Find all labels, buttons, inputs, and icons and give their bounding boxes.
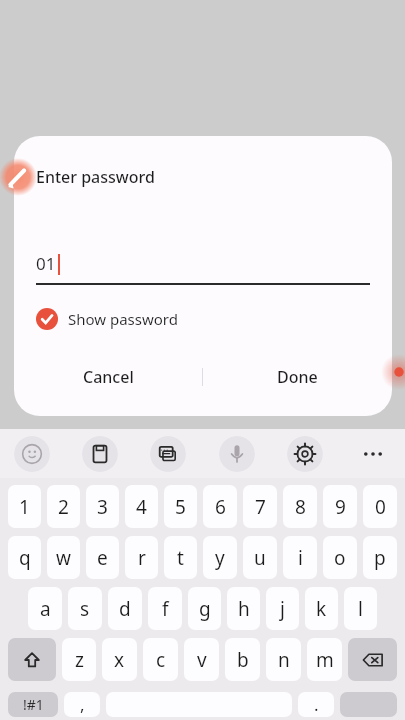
staticText: 2 — [58, 494, 69, 520]
staticText: Done — [277, 366, 318, 388]
staticText: o — [334, 545, 346, 571]
button[interactable]: c — [143, 638, 178, 681]
button[interactable]: Clipboard — [82, 436, 118, 472]
button[interactable]: Voice input — [219, 436, 255, 472]
button[interactable]: g — [188, 587, 221, 630]
staticText: m — [316, 647, 334, 673]
staticText: 3 — [97, 494, 108, 520]
staticText: 7 — [255, 494, 266, 520]
button[interactable]: k — [305, 587, 338, 630]
button[interactable]: 2 — [47, 485, 80, 528]
button[interactable]: i — [283, 536, 317, 579]
button[interactable]: Backspace — [348, 638, 397, 681]
button[interactable]: p — [363, 536, 397, 579]
staticText: !#1 — [23, 695, 44, 714]
button[interactable]: r — [125, 536, 158, 579]
button[interactable]: x — [102, 638, 137, 681]
button[interactable]: !#1 — [8, 692, 58, 717]
button[interactable]: a — [28, 587, 62, 630]
staticText: Cancel — [83, 366, 134, 388]
button[interactable]: o — [323, 536, 357, 579]
button[interactable]: Emoji — [14, 436, 50, 472]
staticText: t — [177, 545, 184, 571]
button[interactable]: Keyboard modes — [150, 436, 186, 472]
button[interactable]: , — [64, 692, 100, 717]
staticText: p — [374, 545, 386, 571]
button[interactable]: 5 — [164, 485, 197, 528]
button[interactable]: j — [266, 587, 299, 630]
button[interactable]: 8 — [283, 485, 317, 528]
button[interactable]: 1 — [8, 485, 41, 528]
staticText: Enter password — [36, 166, 155, 188]
button[interactable]: b — [225, 638, 260, 681]
staticText: i — [298, 545, 303, 571]
button[interactable]: h — [227, 587, 260, 630]
button[interactable]: More options — [355, 436, 391, 472]
button[interactable]: Done — [203, 353, 392, 401]
staticText: n — [278, 647, 290, 673]
staticText: d — [119, 596, 131, 622]
staticText: x — [114, 647, 125, 673]
staticText: l — [358, 596, 363, 622]
staticText: u — [254, 545, 266, 571]
button[interactable]: 9 — [323, 485, 357, 528]
button[interactable]: e — [86, 536, 119, 579]
staticText: . — [314, 693, 319, 716]
button[interactable]: z — [62, 638, 96, 681]
button[interactable]: u — [243, 536, 277, 579]
staticText: v — [197, 647, 207, 673]
staticText: 8 — [295, 494, 306, 520]
staticText: y — [215, 545, 225, 571]
button[interactable]: . — [298, 692, 334, 717]
button[interactable]: Show password — [36, 302, 178, 336]
staticText: 4 — [136, 494, 147, 520]
staticText: j — [280, 596, 285, 622]
button[interactable]: d — [108, 587, 142, 630]
staticText: b — [237, 647, 249, 673]
staticText: 0 — [375, 494, 386, 520]
button[interactable]: m — [307, 638, 342, 681]
staticText: Show password — [68, 309, 178, 329]
button[interactable]: n — [266, 638, 301, 681]
staticText: z — [75, 647, 84, 673]
staticText: h — [238, 596, 250, 622]
button[interactable]: 6 — [203, 485, 237, 528]
button[interactable]: q — [8, 536, 41, 579]
staticText: 01 — [36, 252, 56, 275]
button[interactable]: f — [148, 587, 182, 630]
button[interactable]: t — [164, 536, 197, 579]
button[interactable]: 3 — [86, 485, 119, 528]
staticText: g — [199, 596, 211, 622]
staticText: e — [97, 545, 108, 571]
staticText: w — [56, 545, 71, 571]
button[interactable]: 7 — [243, 485, 277, 528]
button[interactable]: Enter — [340, 692, 397, 717]
button[interactable]: 0 — [363, 485, 397, 528]
button[interactable]: l — [344, 587, 377, 630]
button[interactable]: s — [68, 587, 102, 630]
staticText: , — [80, 693, 85, 716]
staticText: a — [40, 596, 51, 622]
button[interactable]: y — [203, 536, 237, 579]
staticText: 5 — [175, 494, 186, 520]
staticText: 9 — [335, 494, 346, 520]
staticText: k — [316, 596, 327, 622]
staticText: 1 — [19, 494, 30, 520]
button[interactable]: 01 — [36, 237, 370, 285]
button[interactable]: Settings — [287, 436, 323, 472]
staticText: c — [156, 647, 166, 673]
button[interactable]: Shift — [8, 638, 56, 681]
staticText: 6 — [215, 494, 226, 520]
staticText: q — [19, 545, 31, 571]
button[interactable]: w — [47, 536, 80, 579]
button[interactable]: 4 — [125, 485, 158, 528]
staticText: r — [138, 545, 146, 571]
button[interactable]: Cancel — [14, 353, 202, 401]
button[interactable]: v — [184, 638, 219, 681]
staticText: f — [162, 596, 169, 622]
staticText: s — [80, 596, 90, 622]
